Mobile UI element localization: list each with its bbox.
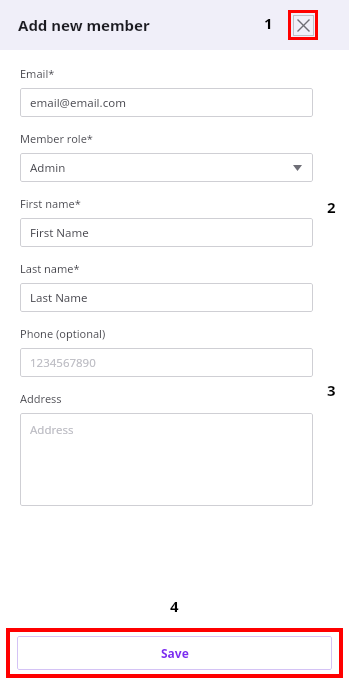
staticText: Member role* [20,131,93,146]
staticText: 3 [327,380,336,400]
button[interactable]: Last Name [20,283,313,312]
staticText: First Name [30,225,89,241]
staticText: First name* [20,196,81,211]
staticText: Last name* [20,261,80,276]
staticText: 4 [170,596,179,616]
staticText: 1 [264,13,273,33]
staticText: email@email.com [30,95,126,111]
button[interactable]: 1234567890 [20,348,313,377]
staticText: Address [30,422,74,438]
staticText: 1234567890 [30,355,96,371]
staticText: Phone (optional) [20,326,106,341]
button[interactable]: Address [20,413,313,506]
staticText: Admin [30,160,66,176]
staticText: Address [20,391,62,406]
staticText: Add new member [18,15,150,35]
button[interactable]: Admin [20,153,313,182]
button[interactable]: email@email.com [20,88,313,117]
button[interactable]: Save [17,636,332,670]
button[interactable]: Close [288,10,318,40]
button[interactable]: First Name [20,218,313,247]
staticText: 2 [327,197,336,217]
staticText: Save [161,645,189,661]
staticText: Email* [20,66,55,81]
staticText: Last Name [30,290,88,306]
